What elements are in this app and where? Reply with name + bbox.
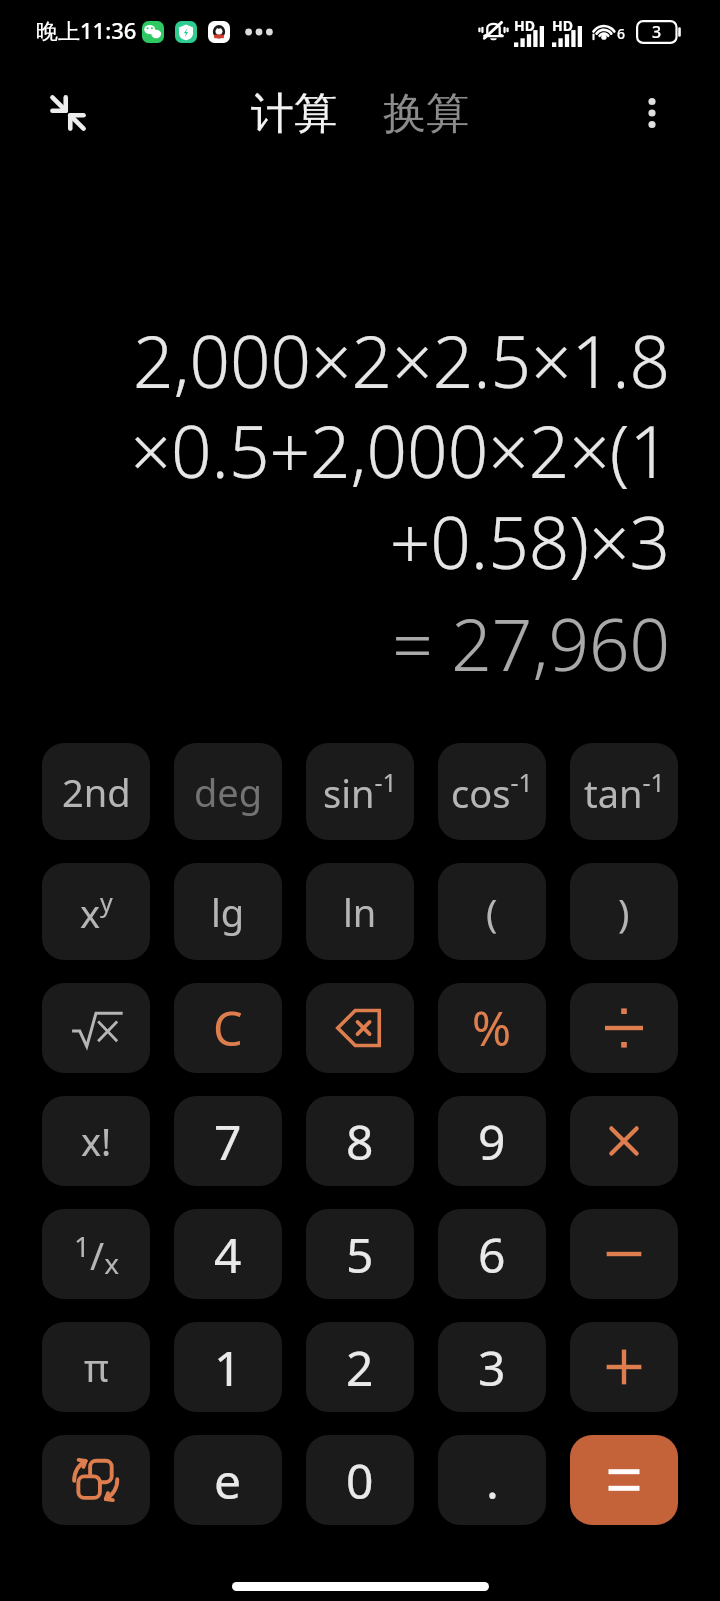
staticText: 1/x: [74, 1227, 119, 1282]
button[interactable]: π: [42, 1322, 150, 1412]
button[interactable]: More options: [626, 87, 678, 139]
staticText: .: [486, 1448, 499, 1513]
staticText: lg: [211, 886, 245, 938]
staticText: 7: [214, 1109, 242, 1174]
button[interactable]: (: [438, 863, 546, 960]
button[interactable]: 1/x: [42, 1209, 150, 1299]
button[interactable]: 换算: [377, 82, 475, 146]
button[interactable]: Backspace: [306, 983, 414, 1073]
button[interactable]: ln: [306, 863, 414, 960]
staticText: 换算: [383, 87, 469, 141]
staticText: 3: [478, 1335, 506, 1400]
button[interactable]: sin-1: [306, 743, 414, 840]
button[interactable]: 9: [438, 1096, 546, 1186]
button[interactable]: 0: [306, 1435, 414, 1525]
staticText: ): [618, 886, 630, 938]
button[interactable]: Subtract: [570, 1209, 678, 1299]
staticText: 6: [617, 24, 626, 43]
staticText: 4: [214, 1222, 242, 1287]
button[interactable]: Collapse: [40, 85, 96, 141]
button[interactable]: 5: [306, 1209, 414, 1299]
staticText: 1: [214, 1335, 242, 1400]
staticText: 计算: [251, 87, 337, 141]
staticText: 8: [346, 1109, 374, 1174]
button[interactable]: 8: [306, 1096, 414, 1186]
staticText: 2: [346, 1335, 374, 1400]
button[interactable]: Add: [570, 1322, 678, 1412]
button[interactable]: 6: [438, 1209, 546, 1299]
staticText: 2,000×2×2.5×1.8 ×0.5+2,000×2×(1 +0.58)×3: [130, 312, 670, 590]
button[interactable]: e: [174, 1435, 282, 1525]
staticText: sin-1: [323, 765, 397, 819]
button[interactable]: ): [570, 863, 678, 960]
button[interactable]: 1: [174, 1322, 282, 1412]
staticText: = 27,960: [392, 595, 670, 692]
staticText: tan-1: [584, 765, 665, 819]
staticText: xy: [80, 885, 113, 939]
staticText: 9: [478, 1109, 506, 1174]
staticText: 6: [478, 1222, 506, 1287]
staticText: HD: [514, 16, 535, 35]
button[interactable]: 4: [174, 1209, 282, 1299]
button[interactable]: lg: [174, 863, 282, 960]
button[interactable]: 7: [174, 1096, 282, 1186]
staticText: 0: [346, 1448, 374, 1513]
staticText: π: [84, 1341, 109, 1393]
button[interactable]: 2nd: [42, 743, 150, 840]
button[interactable]: Equals: [570, 1435, 678, 1525]
button[interactable]: sqrt: [42, 983, 150, 1073]
staticText: x!: [81, 1115, 112, 1167]
button[interactable]: xy: [42, 863, 150, 960]
staticText: e: [214, 1448, 242, 1513]
button[interactable]: x!: [42, 1096, 150, 1186]
button[interactable]: .: [438, 1435, 546, 1525]
button[interactable]: 2: [306, 1322, 414, 1412]
staticText: 晚上11:36: [36, 15, 137, 45]
button[interactable]: Multiply: [570, 1096, 678, 1186]
button[interactable]: deg: [174, 743, 282, 840]
staticText: ln: [343, 886, 377, 938]
button[interactable]: 3: [438, 1322, 546, 1412]
staticText: HD: [552, 16, 573, 35]
button[interactable]: cos-1: [438, 743, 546, 840]
button[interactable]: tan-1: [570, 743, 678, 840]
staticText: C: [213, 996, 243, 1060]
staticText: cos-1: [451, 765, 533, 819]
button[interactable]: Convert: [42, 1435, 150, 1525]
staticText: 5: [346, 1222, 374, 1287]
staticText: %: [472, 996, 512, 1060]
button[interactable]: C: [174, 983, 282, 1073]
staticText: 3: [652, 21, 662, 43]
button[interactable]: 计算: [245, 82, 343, 146]
staticText: (: [486, 886, 498, 938]
button[interactable]: Divide: [570, 983, 678, 1073]
button[interactable]: %: [438, 983, 546, 1073]
staticText: 2nd: [62, 766, 131, 818]
staticText: deg: [194, 766, 263, 818]
